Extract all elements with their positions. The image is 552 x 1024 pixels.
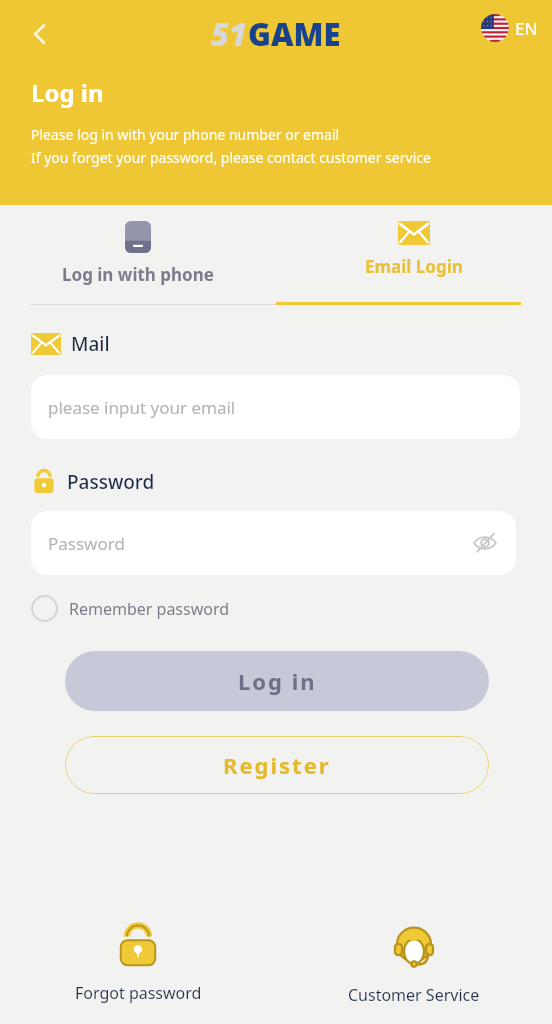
staticText: Email Login <box>365 255 463 278</box>
staticText: Log in <box>238 666 317 696</box>
staticText: Please log in with your phone number or … <box>31 125 340 144</box>
button[interactable]: Register <box>65 736 489 794</box>
staticText: Mail <box>71 331 110 357</box>
staticText: Log in <box>31 76 104 109</box>
button[interactable]: Log in <box>65 651 489 711</box>
button[interactable]: Show password <box>470 528 500 558</box>
staticText: 51 <box>211 13 247 55</box>
button[interactable]: Password <box>31 511 516 575</box>
staticText: EN <box>515 17 538 40</box>
staticText: Forgot password <box>75 982 202 1004</box>
button[interactable]: Customer Service <box>276 922 552 1006</box>
staticText: Log in with phone <box>62 263 214 286</box>
button[interactable]: Remember password <box>31 595 230 622</box>
staticText: please input your email <box>48 396 236 419</box>
staticText: GAME <box>248 13 341 55</box>
button[interactable]: Forgot password <box>0 922 276 1004</box>
staticText: Password <box>48 532 125 555</box>
staticText: Customer Service <box>348 984 480 1006</box>
staticText: Register <box>223 750 331 780</box>
button[interactable]: Back <box>16 10 64 58</box>
button[interactable]: please input your email <box>31 375 520 439</box>
button[interactable]: EN <box>481 14 538 42</box>
button[interactable]: Email Login <box>276 205 552 305</box>
staticText: If you forget your password, please cont… <box>31 148 431 167</box>
button[interactable]: Log in with phone <box>0 205 276 305</box>
staticText: Remember password <box>69 598 230 620</box>
staticText: Password <box>67 469 155 495</box>
